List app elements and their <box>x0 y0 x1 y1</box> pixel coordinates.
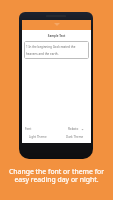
staticText: Change the font or theme for <box>0 167 113 176</box>
button[interactable]: Dark Theme <box>63 133 87 141</box>
staticText: Light Theme <box>29 135 47 139</box>
button[interactable]: Expand <box>22 20 91 30</box>
button[interactable]: Light Theme <box>26 133 50 141</box>
button[interactable]: Roboto <box>68 127 84 131</box>
staticText: easy reading day or night. <box>0 175 113 184</box>
staticText: 1 In the beginning God created the heave… <box>26 45 76 56</box>
other: Choose font <box>81 128 84 131</box>
staticText: Dark Theme <box>66 135 84 139</box>
staticText: Font <box>25 127 32 131</box>
staticText: Sample Text <box>22 34 91 38</box>
button[interactable]: 1 In the beginning God created the heave… <box>24 41 89 59</box>
staticText: Roboto <box>68 127 79 131</box>
other: Expand <box>54 23 60 26</box>
